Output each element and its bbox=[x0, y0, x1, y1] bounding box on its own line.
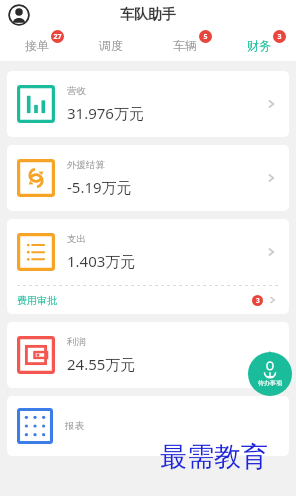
staticText: 接单 bbox=[25, 38, 49, 53]
button[interactable]: Profile bbox=[8, 4, 30, 26]
staticText: 利润 bbox=[67, 336, 86, 348]
button[interactable]: 待办事项 语音 bbox=[248, 352, 292, 396]
button[interactable]: 接单 bbox=[0, 30, 74, 61]
staticText: 1.403万元 bbox=[67, 251, 136, 271]
button[interactable]: 财务 bbox=[222, 30, 296, 61]
button[interactable]: 调度 bbox=[74, 30, 148, 61]
staticText: 营收 bbox=[67, 85, 86, 97]
staticText: -5.19万元 bbox=[67, 177, 132, 197]
button[interactable]: 支出 bbox=[7, 219, 289, 285]
staticText: 最需教育 bbox=[160, 440, 268, 474]
button[interactable]: 费用审批 bbox=[7, 286, 289, 314]
staticText: 调度 bbox=[99, 38, 123, 53]
staticText: 支出 bbox=[67, 233, 86, 245]
staticText: 27 bbox=[53, 32, 62, 42]
button[interactable]: 利润 bbox=[7, 322, 289, 388]
staticText: 财务 bbox=[247, 38, 271, 53]
staticText: 待办事项 bbox=[258, 379, 282, 387]
staticText: 5 bbox=[203, 32, 208, 42]
button[interactable]: 外援结算 bbox=[7, 145, 289, 211]
button[interactable]: 营收 bbox=[7, 71, 289, 137]
staticText: 外援结算 bbox=[67, 159, 105, 171]
staticText: 3 bbox=[256, 296, 260, 305]
staticText: 车队助手 bbox=[120, 6, 176, 24]
staticText: 3 bbox=[277, 32, 282, 42]
button[interactable]: 车辆 bbox=[148, 30, 222, 61]
staticText: 31.976万元 bbox=[67, 103, 144, 123]
staticText: 车辆 bbox=[173, 38, 197, 53]
staticText: 24.55万元 bbox=[67, 354, 136, 374]
staticText: 费用审批 bbox=[17, 294, 57, 307]
button[interactable]: 报表 bbox=[7, 396, 289, 456]
staticText: 报表 bbox=[65, 420, 84, 432]
